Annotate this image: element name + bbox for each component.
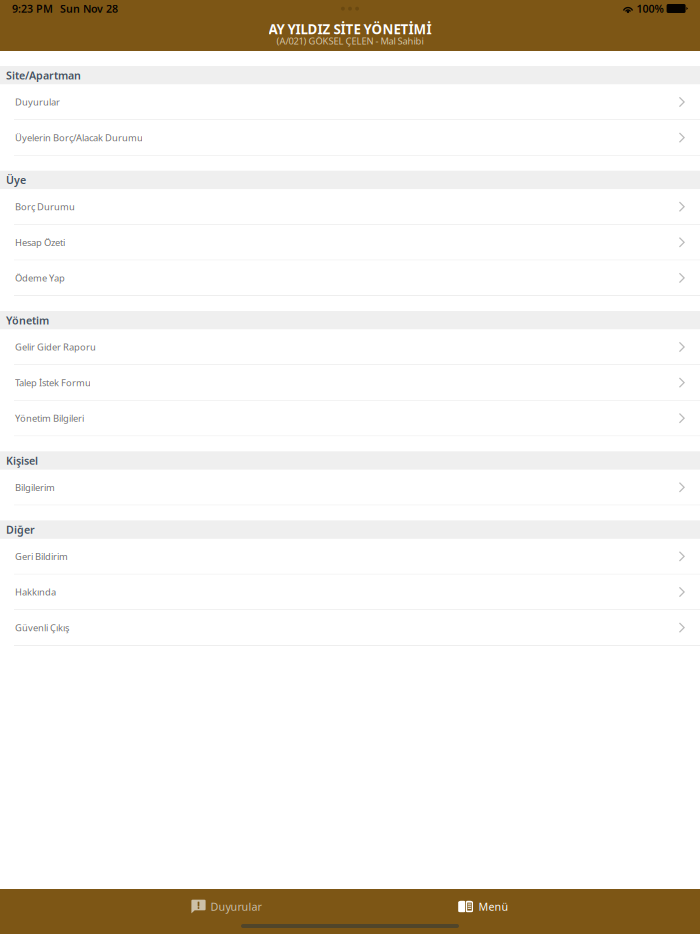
staticText: Menü <box>479 899 509 914</box>
button[interactable]: Geri Bildirim <box>0 539 700 574</box>
button[interactable]: Hesap Özeti <box>0 225 700 260</box>
button[interactable]: Bilgilerim <box>0 470 700 505</box>
button[interactable]: Hakkında <box>0 574 700 610</box>
staticText: Gelir Gider Raporu <box>15 341 96 353</box>
staticText: Yönetim <box>6 313 49 327</box>
button[interactable]: Üyelerin Borç/Alacak Durumu <box>0 120 700 156</box>
staticText: 9:23 PM <box>12 1 53 16</box>
staticText: Güvenli Çıkış <box>15 621 69 634</box>
button[interactable]: Menü <box>458 899 509 914</box>
staticText: Kişisel <box>6 453 38 468</box>
staticText: Site/Apartman <box>6 68 81 82</box>
button[interactable]: Gelir Gider Raporu <box>0 329 700 365</box>
staticText: Hesap Özeti <box>15 236 65 248</box>
staticText: Sun Nov 28 <box>60 1 118 16</box>
button[interactable]: Borç Durumu <box>0 189 700 225</box>
button[interactable]: Güvenli Çıkış <box>0 610 700 646</box>
staticText: (A/021) GÖKSEL ÇELEN - Mal Sahibi <box>276 35 423 47</box>
staticText: Borç Durumu <box>15 200 75 213</box>
staticText: 100% <box>637 1 664 16</box>
staticText: AY YILDIZ SİTE YÖNETİMİ <box>268 20 431 38</box>
button[interactable]: Talep İstek Formu <box>0 365 700 401</box>
button[interactable]: Ödeme Yap <box>0 260 700 296</box>
staticText: Bilgilerim <box>15 481 55 493</box>
button[interactable]: Yönetim Bilgileri <box>0 401 700 436</box>
staticText: Üye <box>6 173 26 187</box>
button[interactable]: Duyurular <box>191 899 262 914</box>
staticText: Diğer <box>6 523 35 537</box>
staticText: Geri Bildirim <box>15 550 68 563</box>
staticText: Duyurular <box>15 96 60 108</box>
staticText: Yönetim Bilgileri <box>15 412 84 424</box>
button[interactable]: Duyurular <box>0 84 700 120</box>
staticText: Duyurular <box>211 899 262 914</box>
staticText: Üyelerin Borç/Alacak Durumu <box>15 131 143 144</box>
staticText: Talep İstek Formu <box>15 376 91 389</box>
staticText: Ödeme Yap <box>15 272 65 284</box>
staticText: Hakkında <box>15 586 56 598</box>
